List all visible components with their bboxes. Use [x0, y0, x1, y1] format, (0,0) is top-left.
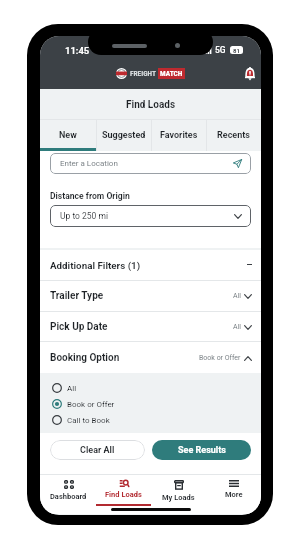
staticText: Call to Book [67, 416, 110, 425]
button[interactable]: Book or Offer [40, 399, 261, 409]
button[interactable]: Additional Filters (1) [40, 250, 261, 280]
staticText: See Results [178, 445, 226, 456]
staticText: Find Loads [126, 99, 176, 111]
staticText: Recents [217, 130, 250, 141]
staticText: Up to 250 mi [60, 211, 109, 221]
staticText: More [225, 490, 243, 499]
button[interactable]: Up to 250 mi [50, 205, 251, 227]
button[interactable]: Booking Option [40, 342, 261, 373]
button[interactable]: Suggested [96, 119, 151, 151]
staticText: Trailer Type [50, 290, 104, 302]
staticText: Book or Offer [199, 354, 241, 362]
staticText: Booking Option [50, 352, 120, 364]
button[interactable]: All [40, 383, 261, 393]
button[interactable]: Clear All [50, 440, 145, 460]
staticText: Dashboard [50, 492, 87, 501]
button[interactable]: Favorites [151, 119, 206, 151]
button[interactable]: Enter a Location [50, 153, 251, 174]
button[interactable]: Notifications [243, 67, 257, 81]
staticText: 5G [215, 45, 226, 55]
staticText: All [233, 292, 241, 300]
staticText: FREIGHT [130, 69, 156, 78]
staticText: Clear All [80, 445, 115, 456]
staticText: Additional Filters (1) [50, 260, 141, 271]
staticText: 81 [233, 47, 240, 54]
staticText: Find Loads [105, 490, 142, 499]
staticText: All [67, 384, 77, 393]
button[interactable]: Recents [206, 119, 261, 151]
button[interactable]: Find Loads [96, 475, 151, 508]
staticText: All [233, 323, 241, 331]
staticText: Book or Offer [67, 400, 115, 409]
staticText: Pick Up Date [50, 321, 108, 333]
staticText: Favorites [160, 130, 198, 141]
staticText: 11:45 [65, 45, 90, 56]
button[interactable]: Pick Up Date [40, 312, 261, 341]
button[interactable]: My Loads [151, 475, 206, 508]
button[interactable]: Trailer Type [40, 281, 261, 311]
staticText: Distance from Origin [50, 191, 130, 201]
staticText: My Loads [162, 493, 195, 502]
staticText: MATCH [160, 69, 183, 78]
button[interactable]: See Results [152, 440, 251, 460]
button[interactable]: New [40, 119, 96, 151]
staticText: Suggested [102, 130, 146, 141]
button[interactable]: Use current location [233, 159, 242, 168]
staticText: New [59, 130, 77, 141]
button[interactable]: Call to Book [40, 415, 261, 425]
staticText: Enter a Location [60, 159, 118, 168]
button[interactable]: Dashboard [40, 475, 96, 508]
button[interactable]: More [206, 475, 261, 508]
